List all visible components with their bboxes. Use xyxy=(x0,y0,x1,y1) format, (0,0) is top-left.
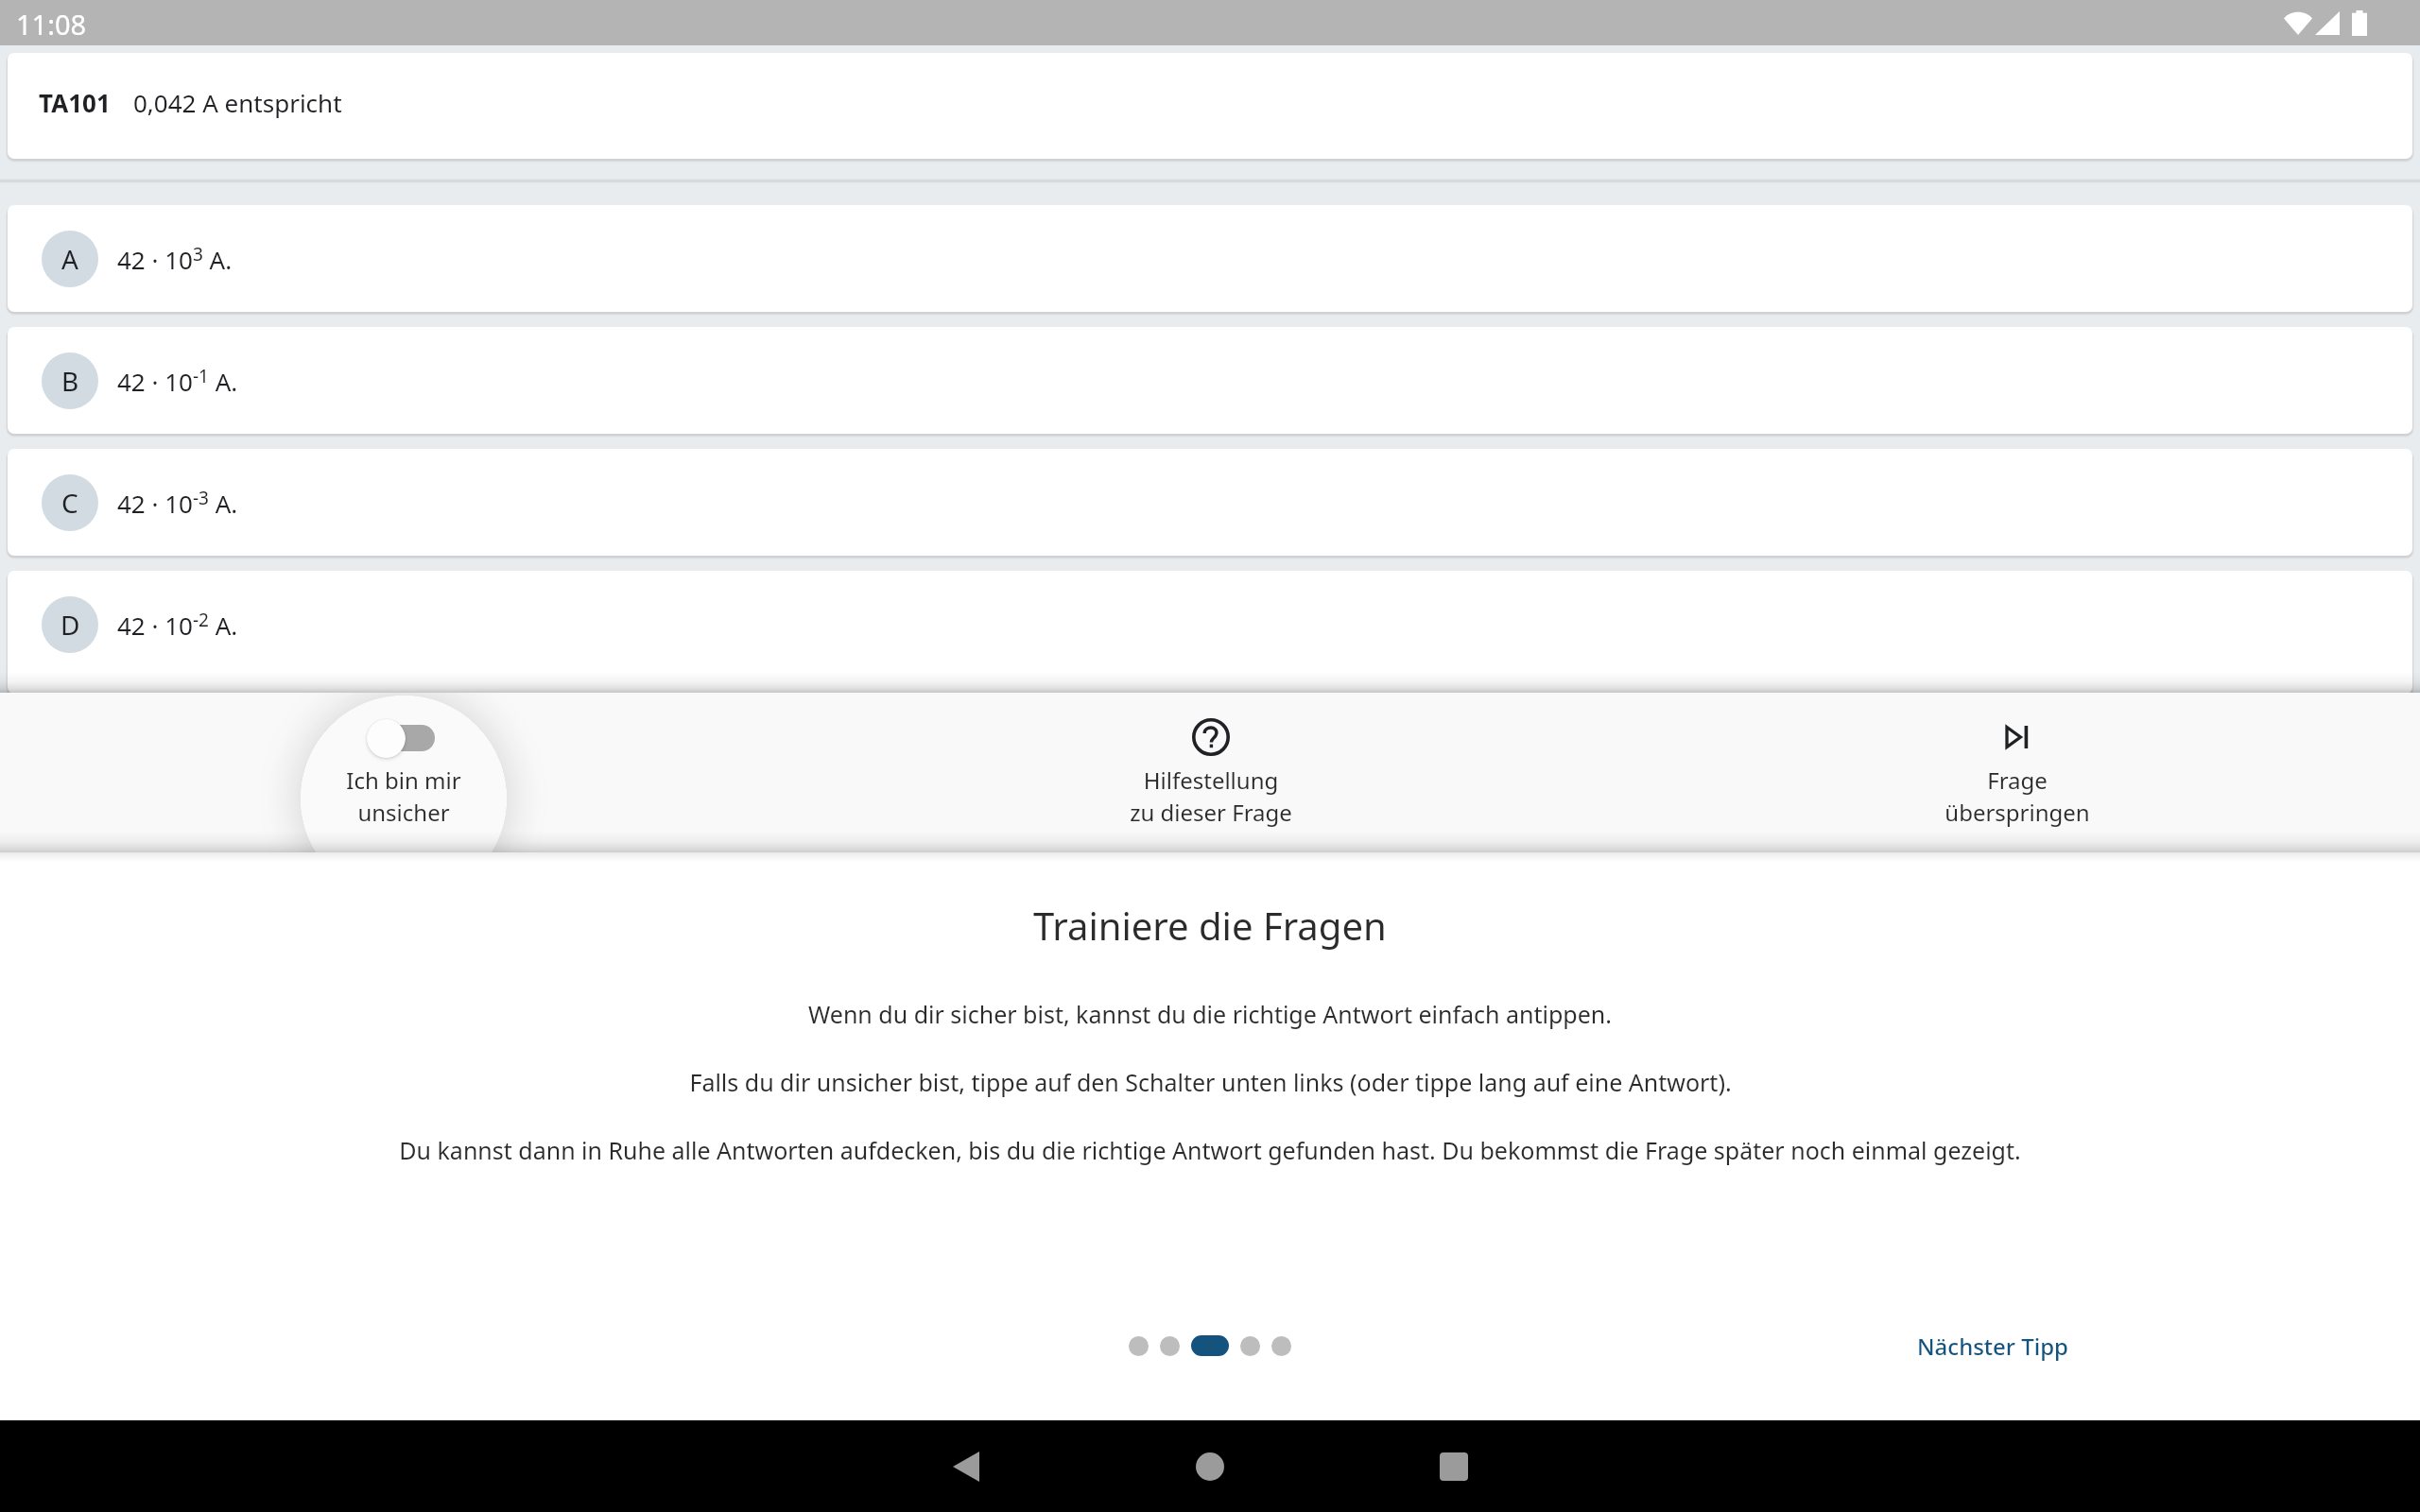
staticText: Falls du dir unsicher bist, tippe auf de… xyxy=(689,1066,1732,1098)
button[interactable]: A xyxy=(8,205,2412,312)
staticText: 11:08 xyxy=(16,6,87,43)
button[interactable]: C xyxy=(8,449,2412,556)
button[interactable]: Home xyxy=(1133,1420,1287,1512)
staticText: B xyxy=(61,363,79,399)
button[interactable]: Back xyxy=(890,1420,1043,1512)
button[interactable]: Hilfestellung xyxy=(807,693,1614,852)
staticText: D xyxy=(60,607,80,643)
staticText: Du kannst dann in Ruhe alle Antworten au… xyxy=(399,1134,2021,1166)
staticText: Ich bin mir unsicher xyxy=(346,765,461,828)
staticText: C xyxy=(61,485,78,521)
button[interactable]: Frage überspringen xyxy=(1614,693,2420,852)
other: Hilfestellung xyxy=(1190,716,1232,758)
staticText: 42 · 10-2 A. xyxy=(117,608,238,642)
other: Frage überspringen xyxy=(1996,716,2038,758)
staticText: Nächster Tipp xyxy=(1917,1331,2068,1362)
staticText: Wenn du dir sicher bist, kannst du die r… xyxy=(808,998,1612,1030)
staticText: A xyxy=(61,241,78,277)
button[interactable]: B xyxy=(8,327,2412,434)
staticText: Hilfestellung zu dieser Frage xyxy=(1130,765,1292,828)
staticText: TA101 xyxy=(39,86,111,119)
button[interactable]: Nächster Tipp xyxy=(1917,1331,2068,1362)
staticText: Trainiere die Fragen xyxy=(1033,900,1387,951)
staticText: 0,042 A entspricht xyxy=(133,86,342,119)
button[interactable]: Ich bin mir unsicher xyxy=(0,693,807,852)
button[interactable]: Recents xyxy=(1377,1420,1530,1512)
staticText: 42 · 10-1 A. xyxy=(117,364,238,398)
staticText: Frage überspringen xyxy=(1945,765,2090,828)
staticText: 42 · 10-3 A. xyxy=(117,486,238,520)
button[interactable]: TA101 xyxy=(8,53,2412,159)
button[interactable]: D xyxy=(8,571,2412,693)
staticText: 42 · 103 A. xyxy=(117,242,233,276)
